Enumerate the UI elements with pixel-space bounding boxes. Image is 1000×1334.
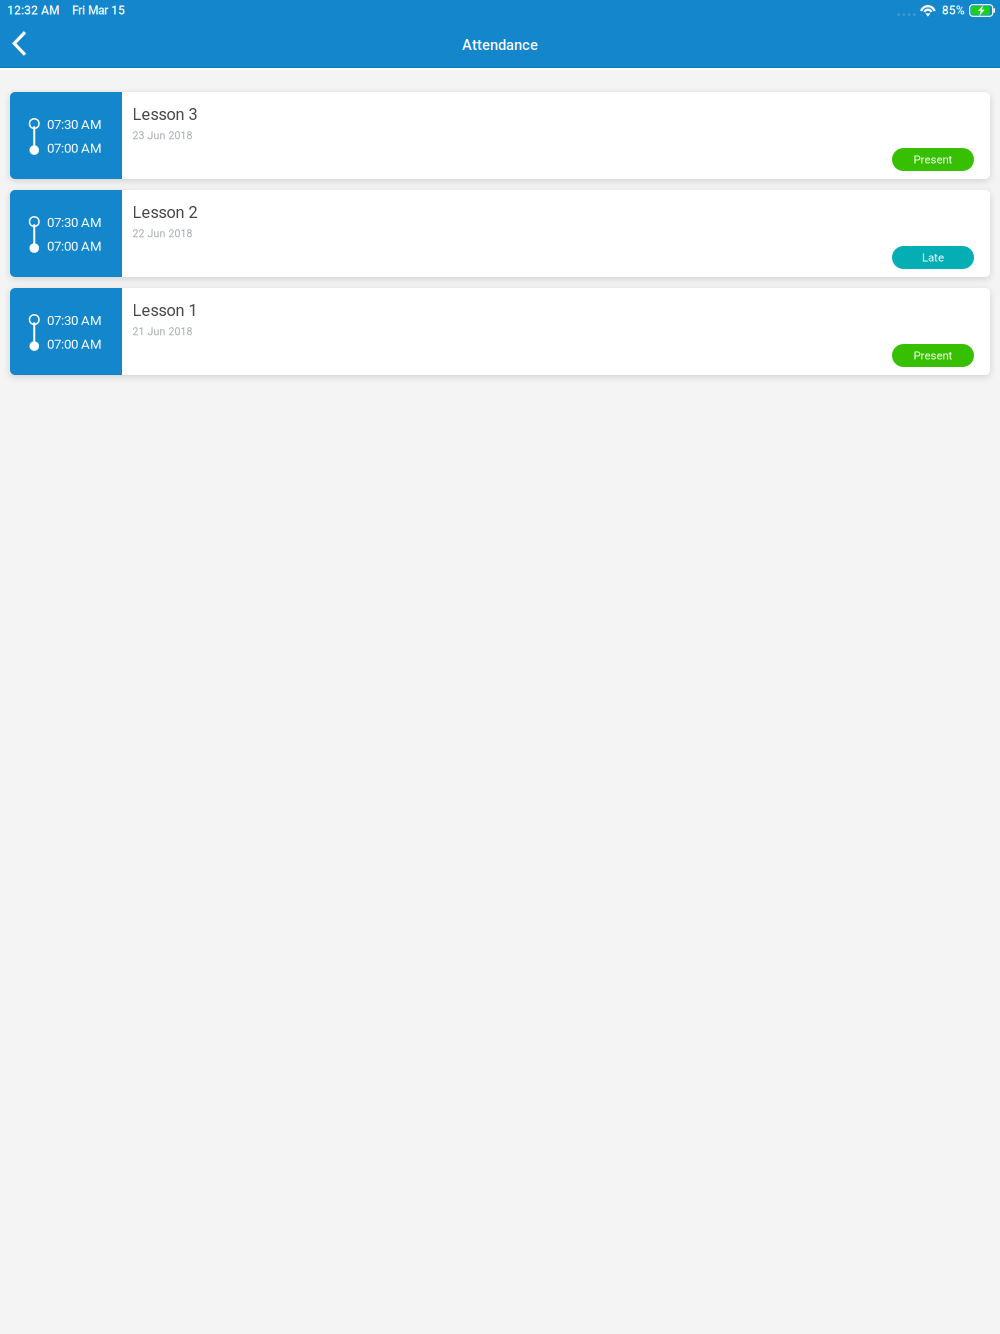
staticText: 22 Jun 2018 [132, 228, 192, 240]
staticText: 07:30 AM [47, 313, 102, 328]
button[interactable]: Present [892, 344, 974, 367]
staticText: 07:30 AM [47, 215, 102, 230]
staticText: 07:30 AM [47, 117, 102, 132]
staticText: 07:00 AM [47, 140, 102, 156]
staticText: 23 Jun 2018 [132, 130, 192, 142]
button[interactable]: 07:30 AM [10, 288, 990, 375]
staticText: 21 Jun 2018 [132, 326, 192, 338]
button[interactable]: 07:30 AM [10, 190, 990, 277]
button[interactable]: 07:30 AM [10, 92, 990, 179]
button[interactable]: Back [0, 23, 46, 67]
staticText: Present [913, 153, 952, 166]
staticText: 07:00 AM [47, 238, 102, 254]
staticText: Present [913, 349, 952, 362]
staticText: 12:32 AM [7, 3, 59, 18]
staticText: Lesson 1 [132, 301, 197, 320]
staticText: Late [922, 251, 944, 264]
button[interactable]: Present [892, 148, 974, 171]
staticText: 07:00 AM [47, 336, 102, 352]
staticText: Lesson 3 [132, 105, 197, 124]
button[interactable]: Late [892, 246, 974, 269]
staticText: Attendance [462, 36, 538, 54]
staticText: Lesson 2 [132, 203, 197, 222]
staticText: 85% [942, 3, 965, 18]
staticText: Fri Mar 15 [72, 3, 125, 18]
